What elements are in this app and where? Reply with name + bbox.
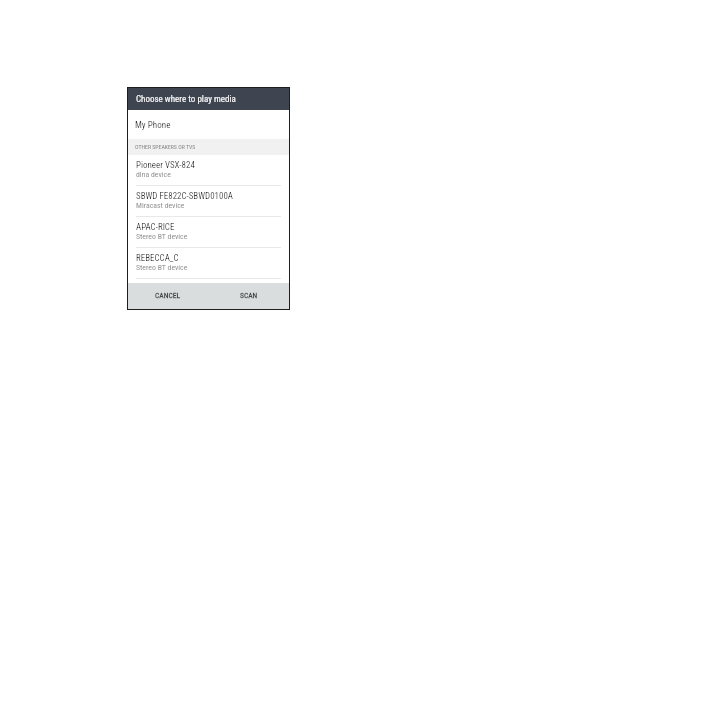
staticText: Choose where to play media — [136, 94, 236, 105]
staticText: Stereo BT device — [136, 232, 188, 241]
staticText: Stereo BT device — [136, 263, 188, 272]
button[interactable]: REBECCA_C, Stereo BT device — [128, 248, 289, 279]
staticText: SCAN — [240, 291, 258, 300]
button[interactable]: CANCEL — [128, 283, 208, 309]
staticText: Miracast device — [136, 201, 185, 210]
staticText: OTHER SPEAKERS OR TVS — [135, 144, 196, 151]
staticText: REBECCA_C — [136, 253, 179, 263]
staticText: SBWD FE822C-SBWD0100A — [136, 191, 233, 201]
button[interactable]: APAC-RICE, Stereo BT device — [128, 217, 289, 248]
button[interactable]: SCAN — [208, 283, 289, 309]
staticText: Pioneer VSX-824 — [136, 160, 195, 170]
staticText: My Phone — [135, 120, 171, 131]
button[interactable]: SBWD FE822C-SBWD0100A, Miracast device — [128, 186, 289, 217]
staticText: CANCEL — [155, 291, 181, 300]
button[interactable]: Pioneer VSX-824, dlna device — [128, 155, 289, 186]
staticText: dlna device — [136, 170, 171, 179]
staticText: APAC-RICE — [136, 222, 175, 232]
button[interactable]: My Phone — [128, 110, 289, 139]
